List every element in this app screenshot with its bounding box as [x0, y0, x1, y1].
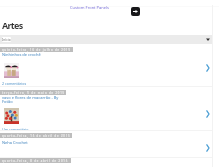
button[interactable]: Post photo [4, 63, 19, 78]
staticText: Ninhinhos de crochê [2, 52, 41, 57]
staticText: 2 comentários [2, 81, 27, 86]
button[interactable]: Início [2, 37, 11, 42]
staticText: quarta-feira, 15 de abril de 2015 [2, 134, 71, 138]
staticText: Início [2, 38, 11, 42]
button[interactable]: vaso e flores de macarrão - By Fotão [2, 95, 59, 104]
staticText: Custom Front Panels [70, 5, 109, 10]
button[interactable]: Custom Front Panels [70, 5, 109, 10]
button[interactable]: Neha Crochet [2, 140, 28, 145]
button[interactable]: Expand post [204, 109, 212, 119]
staticText: Neha Crochet [2, 140, 28, 145]
button[interactable]: Ninhinhos de crochê [2, 52, 41, 57]
staticText: quarta-feira, 8 de abril de 2015 [2, 159, 69, 163]
staticText: Um comentário [2, 127, 29, 132]
button[interactable]: Next advertisement [131, 7, 140, 16]
staticText: Artes [2, 19, 23, 31]
staticText: quinta-feira, 16 de julho de 2015 [2, 48, 71, 52]
button[interactable]: Expand post [204, 63, 212, 73]
button[interactable]: More pages [205, 37, 211, 42]
button[interactable]: Post photo [4, 108, 19, 124]
button[interactable]: Um comentário [2, 127, 29, 132]
staticText: terça-feira, 5 de maio de 2015 [2, 91, 65, 95]
button[interactable]: 2 comentários [2, 81, 27, 86]
staticText: vaso e flores de macarrão - By Fotão [2, 95, 59, 104]
button[interactable]: Expand post [204, 143, 212, 153]
